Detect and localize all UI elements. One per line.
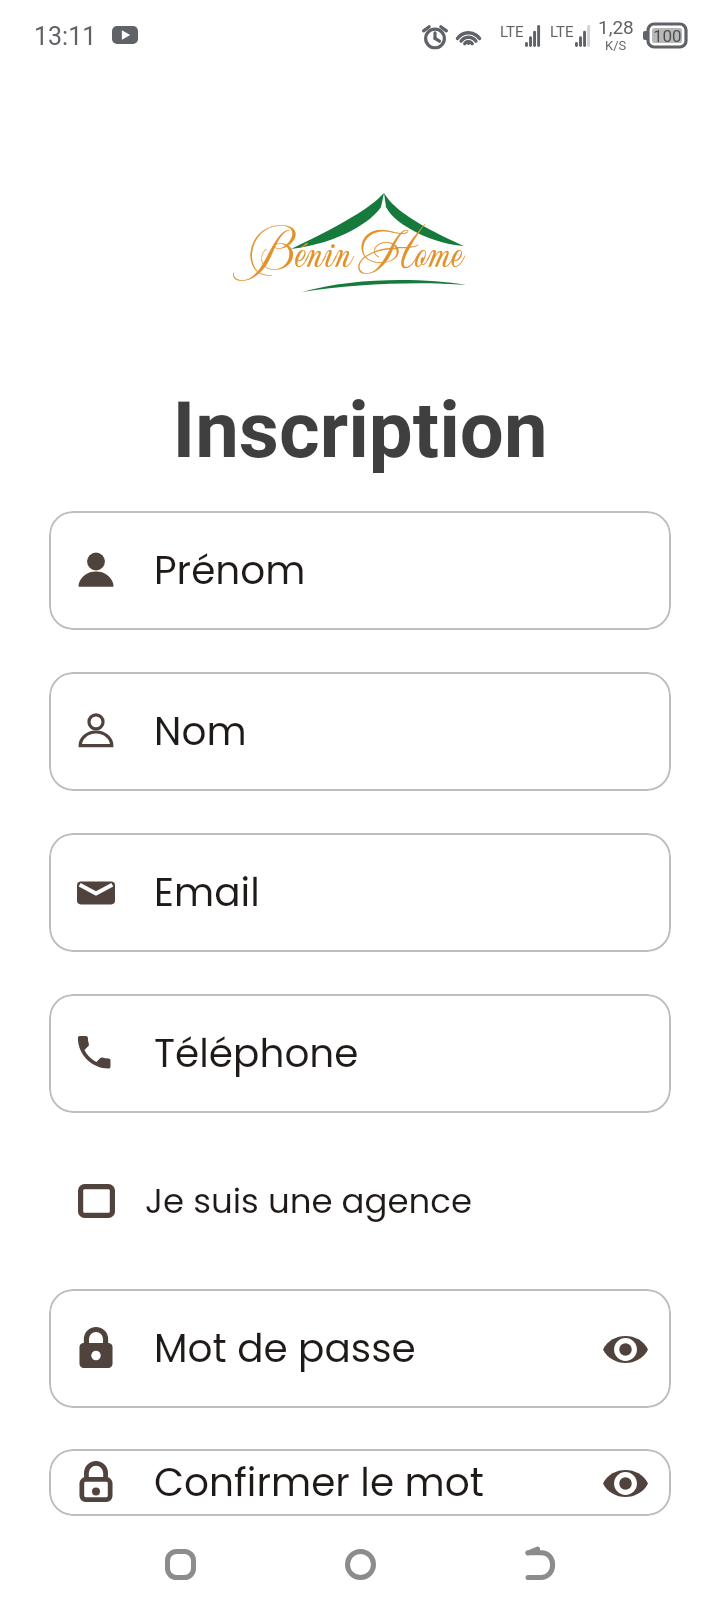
- staticText: Mot de passe: [154, 1321, 416, 1376]
- staticText: Inscription: [0, 385, 720, 473]
- button[interactable]: Home: [315, 1519, 405, 1609]
- staticText: Bénin Home: [249, 217, 462, 286]
- button[interactable]: Recents: [135, 1519, 225, 1609]
- button[interactable]: Mot de passe: [49, 1289, 671, 1408]
- button[interactable]: Email: [49, 833, 671, 952]
- button[interactable]: Téléphone: [49, 994, 671, 1113]
- staticText: 13:11: [34, 22, 97, 51]
- staticText: 100: [653, 26, 682, 46]
- button[interactable]: Confirmer le mot: [49, 1449, 671, 1516]
- staticText: Confirmer le mot: [154, 1455, 484, 1510]
- button[interactable]: Je suis une agence: [49, 1165, 473, 1237]
- staticText: 1,28: [598, 16, 634, 38]
- button[interactable]: Back: [495, 1519, 585, 1609]
- button[interactable]: Prénom: [49, 511, 671, 630]
- staticText: Je suis une agence: [145, 1177, 473, 1225]
- staticText: LTE: [550, 23, 574, 41]
- staticText: Prénom: [154, 543, 306, 598]
- staticText: K/S: [605, 38, 627, 53]
- button[interactable]: Nom: [49, 672, 671, 791]
- button[interactable]: Afficher le mot de passe: [597, 1455, 653, 1511]
- staticText: LTE: [500, 23, 524, 41]
- staticText: Téléphone: [154, 1026, 359, 1081]
- staticText: Nom: [154, 704, 247, 759]
- button[interactable]: Afficher le mot de passe: [597, 1321, 653, 1377]
- staticText: Email: [154, 865, 260, 920]
